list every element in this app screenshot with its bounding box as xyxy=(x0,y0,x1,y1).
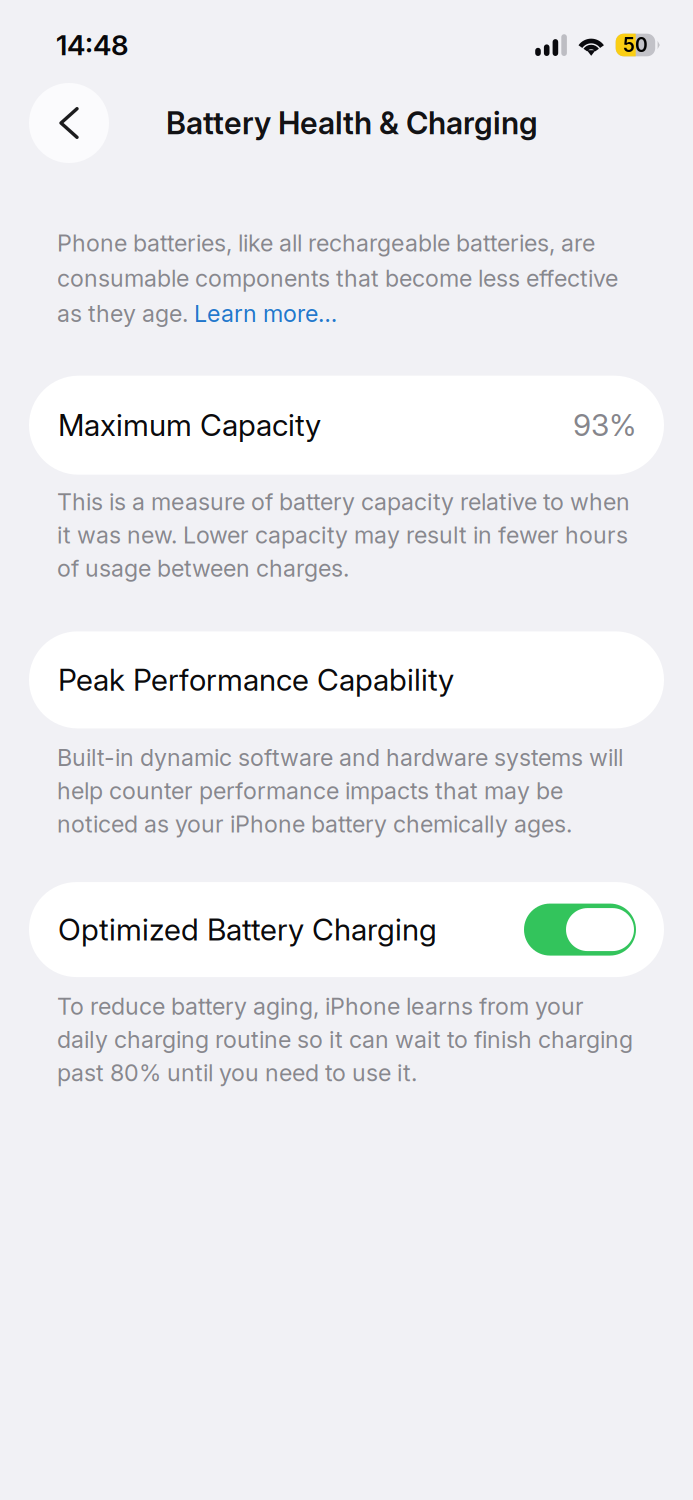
staticText: of usage between charges. xyxy=(57,554,349,582)
staticText: noticed as your iPhone battery chemicall… xyxy=(57,810,572,838)
button[interactable]: Learn more… xyxy=(194,299,337,328)
staticText: consumable components that become less e… xyxy=(57,264,618,292)
staticText: Built-in dynamic software and hardware s… xyxy=(57,743,623,772)
staticText: This is a measure of battery capacity re… xyxy=(57,488,630,516)
staticText: Peak Performance Capability xyxy=(58,662,454,698)
button[interactable]: Maximum Capacity xyxy=(29,376,664,475)
staticText: Learn more… xyxy=(194,299,337,328)
staticText: Phone batteries, like all rechargeable b… xyxy=(57,229,595,257)
button[interactable]: Peak Performance Capability xyxy=(29,631,664,728)
staticText: Battery Health & Charging xyxy=(166,104,538,141)
staticText: help counter performance impacts that ma… xyxy=(57,777,563,805)
staticText: past 80% until you need to use it. xyxy=(57,1058,417,1087)
button[interactable]: Back xyxy=(29,83,109,163)
staticText: daily charging routine so it can wait to… xyxy=(57,1025,633,1053)
staticText: Optimized Battery Charging xyxy=(58,911,437,948)
staticText: 93% xyxy=(573,407,636,443)
staticText: 14:48 xyxy=(56,28,129,62)
staticText: it was new. Lower capacity may result in… xyxy=(57,521,628,549)
staticText: Maximum Capacity xyxy=(58,407,321,443)
staticText: as they age. xyxy=(57,299,194,328)
button[interactable]: Optimized Battery Charging xyxy=(29,882,664,977)
staticText: 50 xyxy=(623,33,648,57)
staticText: To reduce battery aging, iPhone learns f… xyxy=(57,992,584,1020)
